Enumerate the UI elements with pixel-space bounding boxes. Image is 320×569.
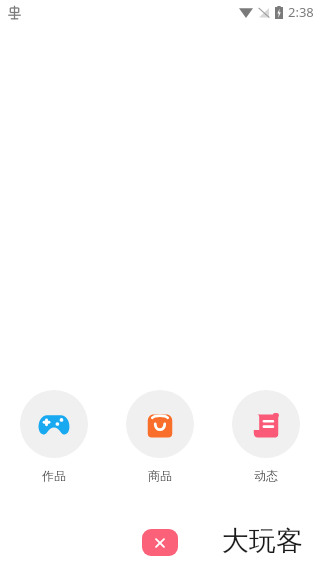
button[interactable]: 作品	[20, 390, 88, 483]
button[interactable]: 商品	[126, 390, 194, 483]
staticText: 动态	[254, 468, 278, 483]
button[interactable]: 动态	[232, 390, 300, 483]
staticText: 2:38	[288, 3, 314, 21]
staticText: 商品	[148, 468, 172, 483]
button[interactable]: 关闭	[142, 529, 178, 556]
staticText: 作品	[42, 468, 66, 483]
staticText: 大玩客	[222, 524, 303, 558]
